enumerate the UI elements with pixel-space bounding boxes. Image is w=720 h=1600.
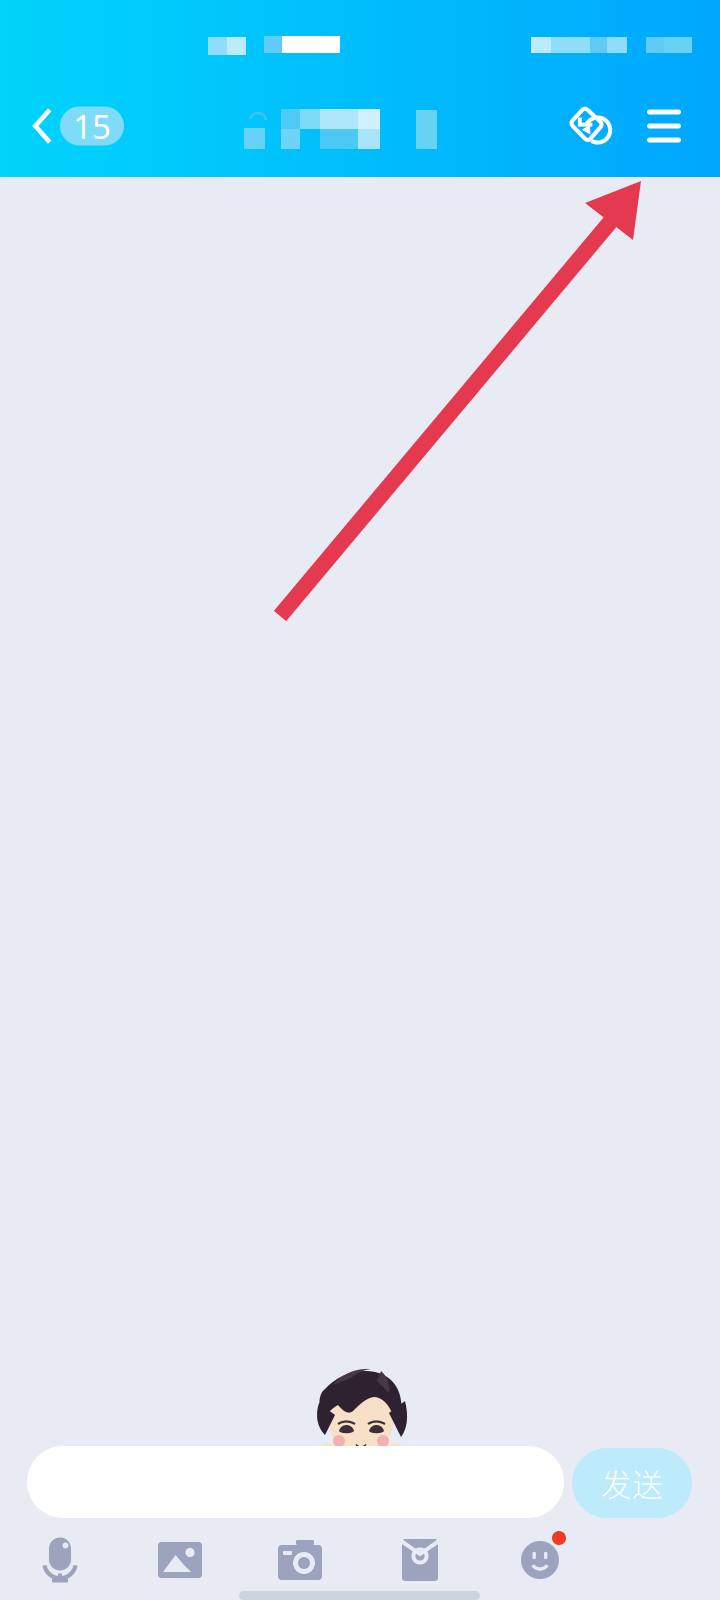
button[interactable]: Menu xyxy=(628,91,700,161)
button[interactable]: Back xyxy=(0,91,60,161)
button[interactable]: History xyxy=(554,91,628,161)
button[interactable]: Red packet xyxy=(360,1530,480,1590)
staticText: 15 xyxy=(73,104,111,148)
button[interactable]: Emoji xyxy=(480,1530,600,1590)
staticText: 发送 xyxy=(601,1461,663,1505)
button[interactable]: Voice message xyxy=(0,1530,120,1590)
button[interactable]: 15 xyxy=(60,106,124,145)
button[interactable]: 发送 xyxy=(572,1448,692,1518)
button[interactable]: Photos xyxy=(120,1530,240,1590)
button[interactable]: Camera xyxy=(240,1530,360,1590)
